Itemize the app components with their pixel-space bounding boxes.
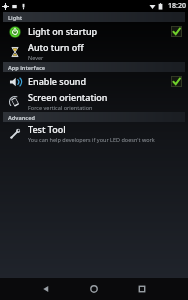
staticText: Light xyxy=(8,14,23,21)
staticText: Force vertical orientation xyxy=(28,104,93,111)
button[interactable]: Toggle xyxy=(171,26,182,37)
button[interactable]: Recent apps xyxy=(132,279,152,299)
staticText: App interface xyxy=(8,64,46,71)
staticText: You can help developers if your LED does… xyxy=(28,136,155,143)
button[interactable]: Screen orientation xyxy=(0,90,188,112)
staticText: Auto turn off xyxy=(28,41,84,53)
staticText: Advanced xyxy=(8,114,35,121)
button[interactable]: Auto turn off xyxy=(0,40,188,62)
staticText: Never xyxy=(28,54,44,61)
staticText: Enable sound xyxy=(28,75,87,87)
button[interactable]: Toggle xyxy=(171,76,182,87)
staticText: 18:20 xyxy=(168,1,186,11)
button[interactable]: Back xyxy=(36,279,56,299)
button[interactable]: Light on startup xyxy=(0,22,188,40)
staticText: Screen orientation xyxy=(28,91,108,103)
staticText: Light on startup xyxy=(28,25,98,37)
button[interactable]: Test Tool xyxy=(0,122,188,144)
button[interactable]: Home xyxy=(84,279,104,299)
button[interactable]: Enable sound xyxy=(0,72,188,90)
staticText: Test Tool xyxy=(28,123,66,135)
